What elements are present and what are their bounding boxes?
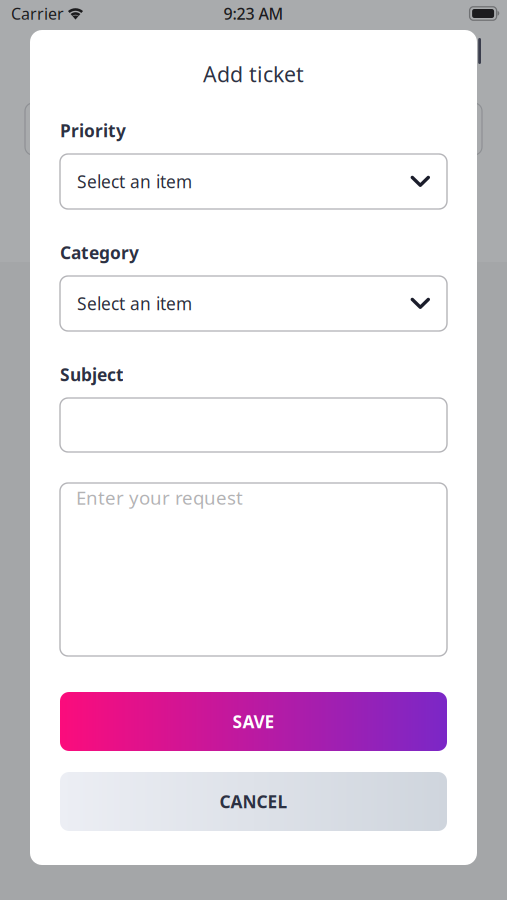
staticText: Enter your request <box>76 485 243 510</box>
staticText: 9:23 AM <box>223 3 283 24</box>
button[interactable]: Enter your request <box>60 483 447 656</box>
staticText: Select an item <box>77 292 192 315</box>
staticText: Add ticket <box>203 60 304 88</box>
button[interactable]: Select an item <box>60 276 447 331</box>
staticText: SAVE <box>232 710 274 733</box>
staticText: Carrier <box>11 3 64 24</box>
button[interactable]: Select an item <box>60 154 447 209</box>
button[interactable] <box>60 398 447 452</box>
button[interactable]: CANCEL <box>60 772 447 831</box>
staticText: Subject <box>60 363 124 386</box>
staticText: Priority <box>60 119 126 142</box>
button[interactable]: SAVE <box>60 692 447 751</box>
staticText: Select an item <box>77 170 192 193</box>
staticText: CANCEL <box>219 790 287 813</box>
staticText: Category <box>60 241 139 264</box>
